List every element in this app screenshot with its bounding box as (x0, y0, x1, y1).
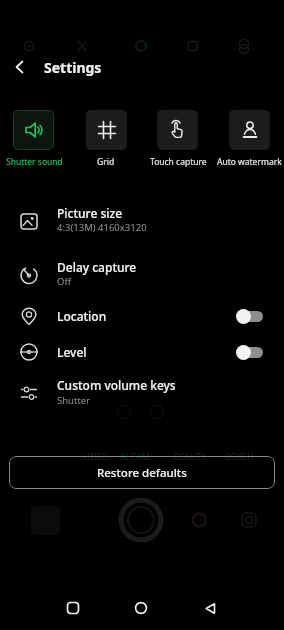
staticText: Shutter sound (6, 156, 63, 168)
button[interactable]: Restore defaults (9, 456, 275, 489)
staticText: BOKEH (225, 451, 254, 463)
button[interactable] (125, 592, 157, 624)
staticText: VIDEO (82, 451, 108, 463)
button[interactable]: Level (0, 332, 284, 372)
button[interactable] (236, 308, 264, 324)
staticText: Grid (97, 156, 115, 168)
staticText: Level (57, 344, 87, 360)
button[interactable] (13, 110, 54, 150)
staticText: Delay capture (57, 259, 137, 275)
button[interactable] (8, 55, 32, 79)
button[interactable] (194, 592, 226, 624)
button[interactable] (157, 110, 198, 150)
button[interactable] (86, 110, 127, 150)
button[interactable]: Delay capture (0, 255, 284, 295)
staticText: Settings (44, 58, 102, 77)
staticText: Auto watermark (217, 156, 282, 168)
staticText: Custom volume keys (57, 377, 176, 393)
staticText: BEAUTY (174, 451, 206, 463)
button[interactable]: Custom volume keys (0, 373, 284, 413)
button[interactable] (229, 110, 270, 150)
staticText: 4:3(13M) 4160x3120 (57, 221, 147, 234)
staticText: Location (57, 308, 107, 324)
staticText: Off (57, 275, 71, 288)
staticText: Shutter (57, 394, 91, 407)
button[interactable] (57, 592, 89, 624)
button[interactable]: Location (0, 296, 284, 336)
staticText: Restore defaults (97, 465, 187, 481)
staticText: Touch capture (150, 156, 207, 168)
button[interactable]: Picture size (0, 201, 284, 241)
staticText: AI CAM (120, 451, 150, 463)
staticText: Picture size (57, 205, 123, 221)
button[interactable] (236, 344, 264, 360)
